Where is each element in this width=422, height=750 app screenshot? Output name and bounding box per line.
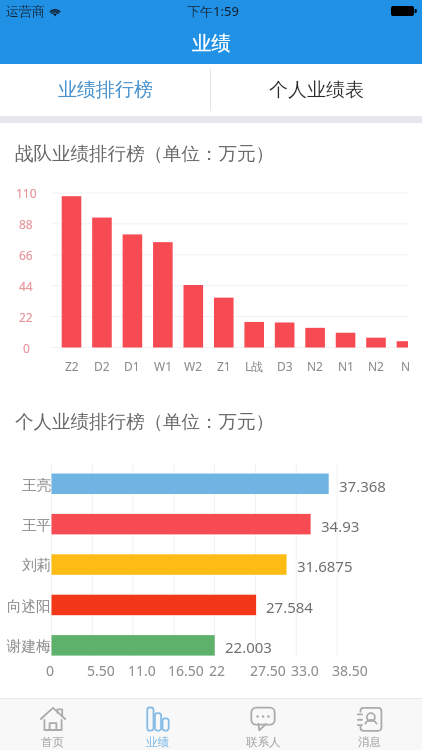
staticText: N — [401, 358, 411, 374]
staticText: 22 — [209, 661, 226, 680]
staticText: D1 — [124, 358, 140, 374]
staticText: 34.93 — [321, 516, 360, 536]
staticText: 31.6875 — [297, 556, 353, 576]
staticText: 运营商 — [6, 3, 45, 19]
staticText: 王亮 — [22, 476, 51, 494]
staticText: 个人业绩排行榜（单位：万元） — [15, 410, 274, 433]
staticText: N2 — [307, 358, 323, 374]
staticText: 0 — [46, 661, 55, 680]
staticText: 战队业绩排行榜（单位：万元） — [15, 142, 274, 165]
staticText: 首页 — [41, 735, 64, 749]
staticText: W2 — [184, 358, 203, 374]
staticText: 消息 — [358, 735, 381, 749]
staticText: 刘莉 — [22, 556, 51, 574]
staticText: 王平 — [22, 516, 51, 534]
button[interactable]: 联系人 — [210, 699, 316, 750]
staticText: 88 — [19, 216, 33, 232]
staticText: 0 — [23, 340, 30, 356]
staticText: 业绩排行榜 — [58, 78, 153, 102]
staticText: 22 — [19, 309, 33, 325]
staticText: 业绩 — [192, 31, 231, 56]
staticText: 66 — [19, 247, 33, 263]
button[interactable]: 首页 — [0, 699, 105, 750]
staticText: 谢建梅 — [7, 637, 51, 655]
button[interactable]: 业绩 — [105, 699, 210, 750]
staticText: D2 — [94, 358, 110, 374]
staticText: Z2 — [65, 358, 79, 374]
staticText: N2 — [368, 358, 384, 374]
staticText: D3 — [277, 358, 293, 374]
staticText: 个人业绩表 — [269, 78, 364, 102]
button[interactable]: 业绩排行榜 — [0, 64, 210, 116]
staticText: 11.0 — [128, 661, 156, 680]
staticText: N1 — [338, 358, 354, 374]
staticText: 38.50 — [332, 661, 368, 680]
staticText: 业绩 — [146, 735, 169, 749]
staticText: 37.368 — [339, 476, 386, 496]
staticText: 22.003 — [225, 637, 272, 657]
staticText: Z1 — [217, 358, 231, 374]
staticText: 16.50 — [168, 661, 204, 680]
staticText: 44 — [19, 278, 33, 294]
staticText: 110 — [16, 185, 37, 201]
staticText: 向述阳 — [7, 597, 51, 615]
staticText: 33.0 — [291, 661, 319, 680]
staticText: W1 — [154, 358, 173, 374]
staticText: 27.584 — [266, 597, 313, 617]
button[interactable]: 消息 — [316, 699, 422, 750]
staticText: 5.50 — [87, 661, 115, 680]
staticText: 联系人 — [246, 735, 281, 749]
staticText: 27.50 — [250, 661, 286, 680]
button[interactable]: 个人业绩表 — [211, 64, 422, 116]
staticText: L战 — [245, 358, 264, 374]
staticText: 下午1:59 — [187, 2, 239, 20]
